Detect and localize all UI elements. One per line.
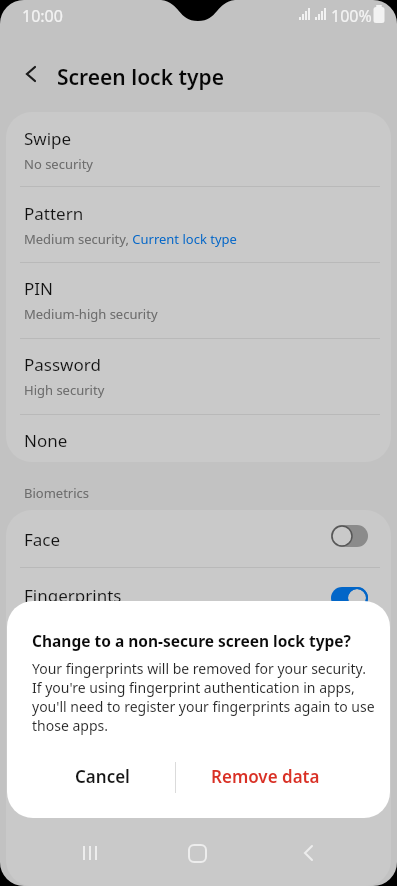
staticText: PIN [24,277,53,300]
button[interactable]: Face [24,528,397,551]
staticText: Cancel [75,765,130,788]
button[interactable] [68,838,112,868]
button[interactable] [331,525,368,547]
button[interactable]: Fingerprints [24,584,397,607]
staticText: Fingerprints [24,584,122,607]
staticText: Pattern [24,202,84,225]
button[interactable]: Swipe [24,127,397,173]
button[interactable] [288,838,332,868]
button[interactable]: PIN [24,277,397,323]
button[interactable]: Pattern [24,202,397,248]
staticText: Medium-high security [24,305,158,323]
staticText: No security [24,155,94,173]
staticText: Change to a non-secure screen lock type? [32,630,352,651]
button[interactable]: Cancel [40,756,165,796]
staticText: 100% [331,5,372,27]
button[interactable] [176,838,220,868]
button[interactable] [24,66,40,82]
button[interactable]: Remove data [202,756,329,796]
button[interactable] [331,587,368,609]
staticText: None [24,429,68,452]
staticText: Screen lock type [57,63,224,92]
button[interactable]: Password [24,353,397,399]
staticText: Your fingerprints will be removed for yo… [32,659,375,735]
staticText: Medium security, Current lock type [24,230,237,248]
staticText: Face [24,528,61,551]
staticText: High security [24,381,105,399]
button[interactable]: None [24,429,397,452]
staticText: Swipe [24,127,72,150]
staticText: Biometrics [24,484,90,502]
staticText: Password [24,353,101,376]
staticText: Remove data [211,765,320,788]
staticText: 10:00 [22,5,63,27]
